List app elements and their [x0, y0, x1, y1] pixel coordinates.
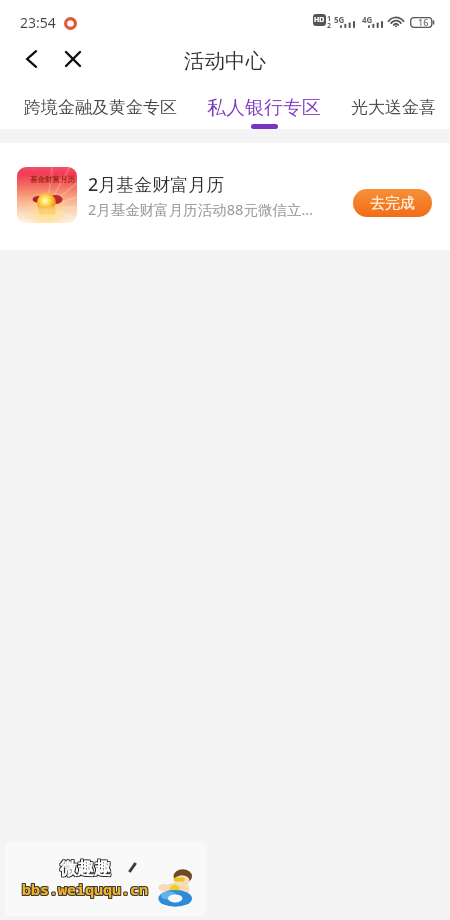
staticText: 微趣趣 [59, 857, 110, 878]
staticText: 5G [334, 14, 345, 25]
staticText: bbs.weiququ.cn [22, 878, 149, 898]
staticText: bbs.weiququ.cn [23, 879, 150, 899]
staticText: 16 [418, 16, 429, 28]
staticText: 23:54 [20, 13, 56, 32]
button[interactable]: 私人银行专区 [205, 80, 323, 129]
staticText: bbs.weiququ.cn [23, 880, 150, 900]
staticText: 2月基金财富月历 [88, 172, 225, 197]
staticText: 2 [327, 21, 332, 31]
staticText: bbs.weiququ.cn [21, 878, 148, 898]
staticText: bbs.weiququ.cn [22, 879, 149, 899]
staticText: 私人银行专区 [207, 96, 321, 120]
staticText: 1 [327, 14, 332, 24]
button[interactable]: 基金财富月历 [0, 143, 450, 250]
staticText: bbs.weiququ.cn [21, 879, 148, 899]
staticText: 微趣趣 [61, 859, 112, 880]
staticText: bbs.weiququ.cn [22, 880, 149, 900]
staticText: bbs.weiququ.cn [23, 878, 150, 898]
staticText: HD [314, 15, 325, 25]
staticText: 微趣趣 [59, 858, 110, 879]
staticText: 跨境金融及黄金专区 [24, 97, 177, 118]
button[interactable]: 光大送金喜 [349, 80, 438, 129]
staticText: 微趣趣 [60, 857, 111, 878]
staticText: 2月基金财富月历活动88元微信立… [88, 199, 313, 219]
staticText: 活动中心 [184, 48, 266, 74]
button[interactable]: Close [52, 38, 94, 80]
button[interactable]: 去完成 [353, 189, 432, 217]
staticText: 微趣趣 [59, 859, 110, 880]
staticText: bbs.weiququ.cn [21, 880, 148, 900]
staticText: 微趣趣 [61, 857, 112, 878]
staticText: 光大送金喜 [351, 97, 436, 118]
staticText: 微趣趣 [60, 858, 111, 879]
button[interactable]: Back [10, 38, 52, 80]
staticText: 微趣趣 [60, 859, 111, 880]
staticText: 去完成 [370, 194, 415, 213]
staticText: 基金财富月历 [30, 175, 75, 184]
button[interactable]: 跨境金融及黄金专区 [22, 80, 179, 129]
staticText: 微趣趣 [61, 858, 112, 879]
staticText: 4G [362, 14, 373, 25]
